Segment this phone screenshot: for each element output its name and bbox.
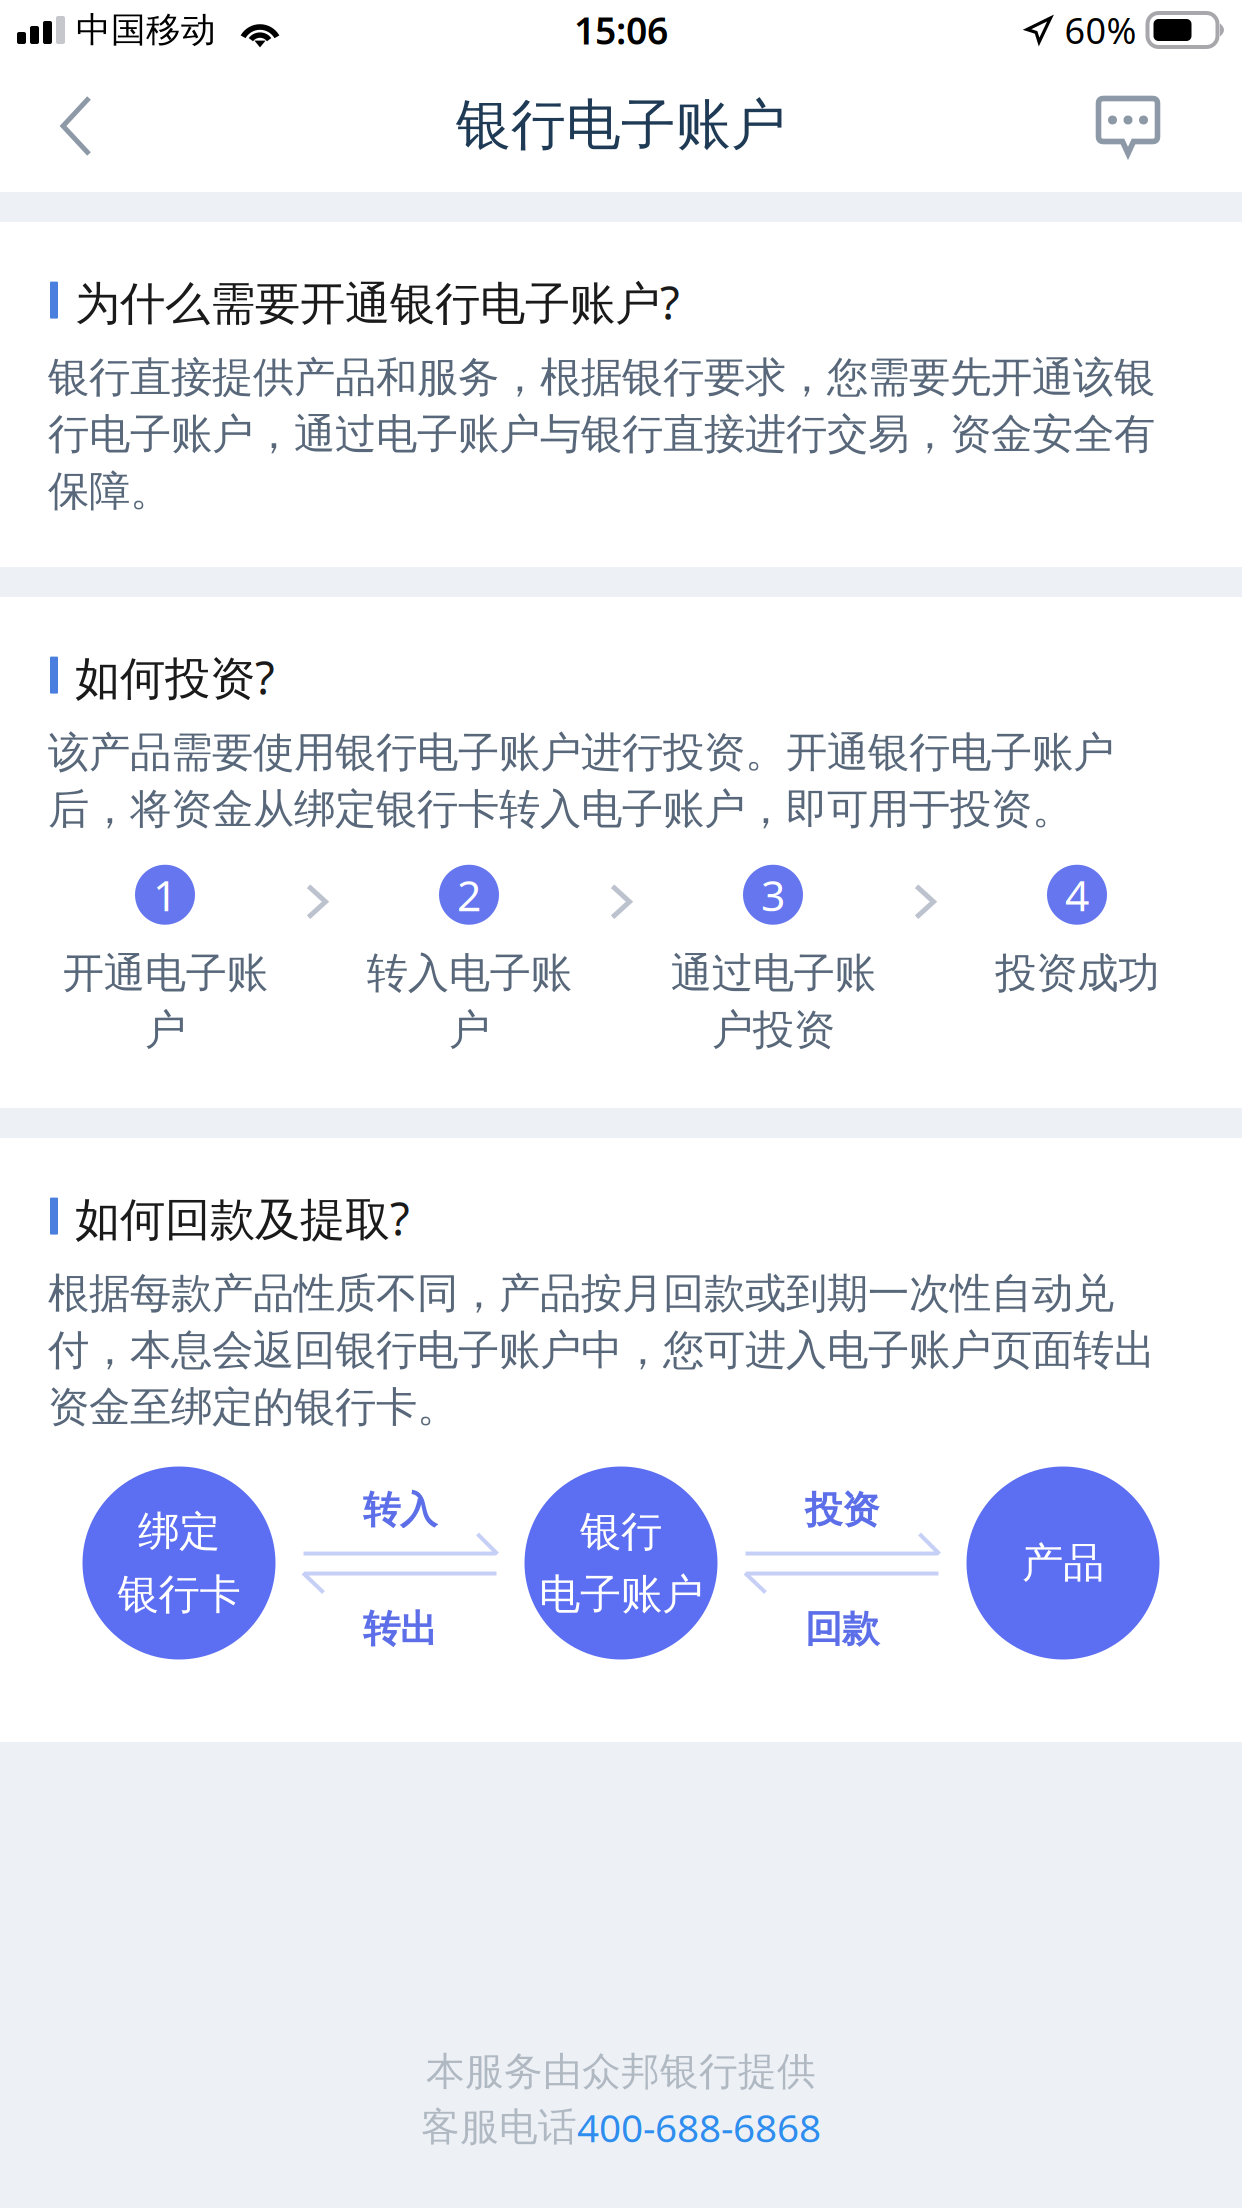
- staticText: 通过电子账 户投资: [670, 948, 875, 1055]
- staticText: 银行直接提供产品和服务，根据银行要求，您需要先开通该银行电子账户，通过电子账户与…: [48, 352, 1155, 516]
- staticText: 400-688-6868: [577, 2101, 821, 2153]
- staticText: 投资成功: [995, 948, 1159, 998]
- button[interactable]: 在线客服: [1068, 66, 1188, 186]
- staticText: 4: [1065, 866, 1089, 923]
- staticText: 该产品需要使用银行电子账户进行投资。开通银行电子账户后，将资金从绑定银行卡转入电…: [48, 727, 1114, 835]
- button[interactable]: 返回: [16, 66, 136, 186]
- staticText: 电子账户: [539, 1569, 703, 1620]
- button[interactable]: 400-688-6868: [577, 2101, 821, 2153]
- staticText: 银行: [580, 1506, 662, 1557]
- staticText: 产品: [1022, 1538, 1104, 1588]
- staticText: 2: [457, 866, 481, 923]
- staticText: 开通电子账 户: [62, 948, 267, 1055]
- staticText: 60%: [1064, 6, 1136, 54]
- staticText: 回款: [805, 1606, 879, 1652]
- staticText: 转入: [363, 1487, 437, 1533]
- staticText: 3: [761, 866, 785, 923]
- staticText: 银行卡: [117, 1569, 240, 1620]
- staticText: 15:06: [574, 5, 668, 55]
- staticText: 投资: [805, 1487, 879, 1533]
- staticText: 根据每款产品性质不同，产品按月回款或到期一次性自动兑付，本息会返回银行电子账户中…: [48, 1268, 1155, 1432]
- staticText: 转出: [363, 1606, 437, 1652]
- staticText: 客服电话: [421, 2103, 577, 2151]
- staticText: 本服务由众邦银行提供: [426, 2048, 816, 2095]
- staticText: 银行电子账户: [456, 91, 786, 158]
- staticText: 中国移动: [76, 9, 216, 51]
- staticText: 1: [153, 866, 177, 923]
- staticText: 绑定: [138, 1506, 220, 1557]
- staticText: 转入电子账 户: [366, 948, 571, 1055]
- staticText: 为什么需要开通银行电子账户?: [75, 272, 680, 332]
- staticText: 如何投资?: [75, 647, 275, 707]
- staticText: 如何回款及提取?: [75, 1188, 410, 1248]
